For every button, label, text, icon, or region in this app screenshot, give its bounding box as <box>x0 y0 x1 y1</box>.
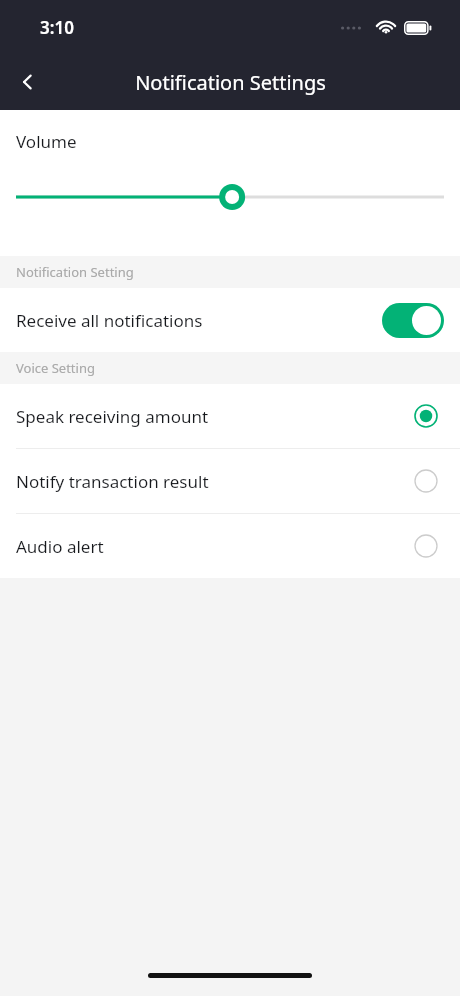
button[interactable]: Audio alert <box>0 514 460 578</box>
staticText: Receive all notifications <box>16 309 203 332</box>
staticText: Notify transaction result <box>16 470 209 493</box>
button[interactable]: Volume slider <box>16 172 444 222</box>
other: Speak receiving amount option <box>414 404 438 428</box>
other: Audio alert option <box>414 534 438 558</box>
button[interactable]: Back <box>0 54 56 110</box>
button[interactable]: Receive all notifications <box>0 288 460 352</box>
button[interactable]: Speak receiving amount <box>0 384 460 448</box>
staticText: Volume <box>16 130 77 153</box>
other: Notify transaction result option <box>414 469 438 493</box>
button[interactable]: Notify transaction result <box>0 449 460 513</box>
other: Receive all notifications toggle <box>382 303 444 338</box>
staticText: Speak receiving amount <box>16 405 209 428</box>
staticText: Notification Settings <box>135 69 326 96</box>
staticText: Voice Setting <box>16 359 95 377</box>
staticText: Notification Setting <box>16 263 134 281</box>
staticText: 3:10 <box>40 16 74 39</box>
staticText: Audio alert <box>16 535 104 558</box>
